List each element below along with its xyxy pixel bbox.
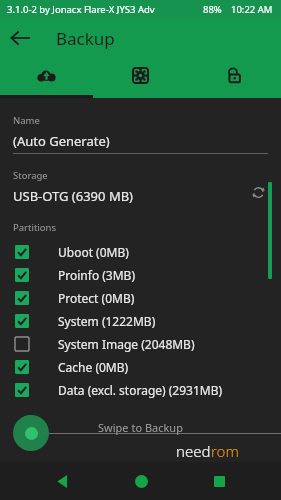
staticText: USB-OTG (6390 MB) [13, 187, 134, 205]
staticText: need [176, 441, 211, 461]
staticText: 88% [203, 3, 222, 16]
staticText: Name [13, 114, 40, 127]
button[interactable]: System Image (2048MB) [0, 332, 281, 355]
button[interactable]: Backup tab [0, 58, 93, 98]
staticText: Partitions [13, 221, 56, 234]
button[interactable]: Swipe to Backup [13, 415, 49, 451]
button[interactable]: Cache (0MB) [0, 355, 281, 378]
staticText: Proinfo (3MB) [58, 267, 136, 283]
button[interactable]: Home [124, 464, 158, 498]
button[interactable]: Refresh storage [245, 179, 271, 205]
button[interactable]: Recent apps [202, 464, 236, 498]
staticText: Cache (0MB) [58, 359, 129, 375]
staticText: Swipe to Backup [98, 420, 183, 435]
staticText: Data (excl. storage) (2931MB) [58, 382, 223, 398]
button[interactable]: Back [45, 464, 79, 498]
button[interactable]: Settings tab [93, 58, 187, 98]
staticText: Storage [13, 169, 48, 182]
staticText: 10:22 AM [231, 3, 273, 16]
staticText: rom [211, 441, 239, 461]
button[interactable]: Protect (0MB) [0, 286, 281, 309]
button[interactable]: System (1222MB) [0, 309, 281, 332]
staticText: Uboot (0MB) [58, 244, 129, 260]
button[interactable]: Uboot (0MB) [0, 240, 281, 263]
staticText: 3.1.0-2 by Jonacx Flare-X JYS3 Adv [7, 3, 155, 16]
button[interactable]: Back [0, 18, 40, 58]
button[interactable]: Proinfo (3MB) [0, 263, 281, 286]
staticText: Protect (0MB) [58, 290, 135, 306]
button[interactable]: Unlock tab [187, 58, 281, 98]
staticText: Backup [56, 27, 115, 50]
staticText: System Image (2048MB) [58, 336, 195, 352]
staticText: System (1222MB) [58, 313, 156, 329]
button[interactable]: Data (excl. storage) (2931MB) [0, 378, 281, 401]
staticText: (Auto Generate) [13, 132, 110, 150]
